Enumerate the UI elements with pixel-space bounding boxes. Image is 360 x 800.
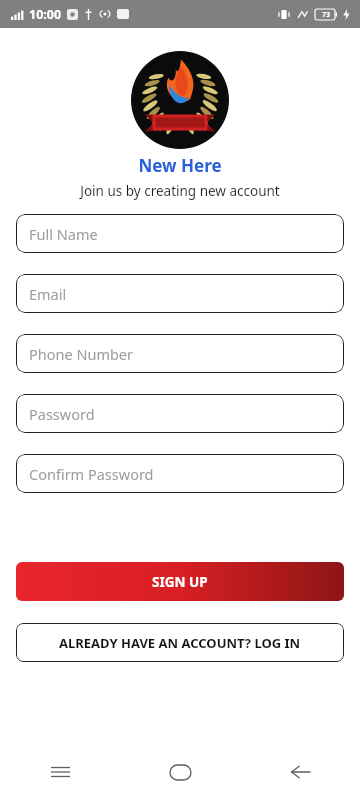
staticText: Phone Number — [29, 344, 134, 364]
button[interactable]: SIGN UP — [16, 562, 344, 601]
staticText: ALREADY HAVE AN ACCOUNT? LOG IN — [59, 634, 301, 652]
button[interactable]: Home — [120, 744, 240, 800]
button[interactable]: Email — [16, 274, 344, 313]
staticText: Email — [29, 284, 67, 304]
staticText: Full Name — [29, 224, 98, 244]
staticText: Password — [29, 404, 95, 424]
button[interactable]: Full Name — [16, 214, 344, 253]
staticText: Confirm Password — [29, 464, 154, 484]
button[interactable]: Password — [16, 394, 344, 433]
button[interactable]: ALREADY HAVE AN ACCOUNT? LOG IN — [16, 623, 344, 662]
staticText: 10:00 — [29, 6, 62, 23]
staticText: 73 — [322, 10, 331, 20]
staticText: New Here — [138, 154, 222, 177]
button[interactable]: Confirm Password — [16, 454, 344, 493]
button[interactable]: Phone Number — [16, 334, 344, 373]
button[interactable]: Recent apps — [0, 744, 120, 800]
staticText: Join us by creating new account — [80, 182, 280, 200]
staticText: SIGN UP — [152, 573, 208, 591]
button[interactable]: Back — [240, 744, 360, 800]
